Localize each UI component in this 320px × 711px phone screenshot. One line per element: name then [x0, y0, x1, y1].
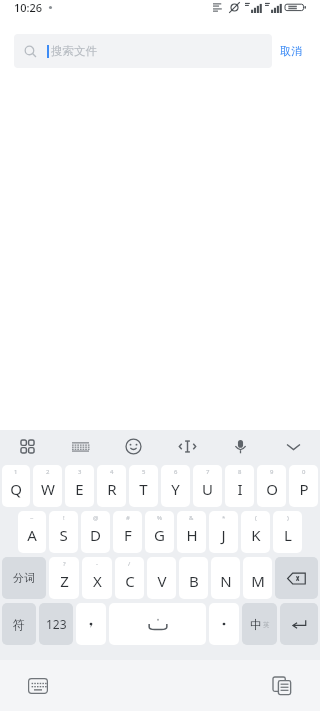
- staticText: R: [107, 479, 117, 499]
- staticText: 10:26: [14, 0, 43, 15]
- staticText: 分词: [13, 571, 35, 585]
- staticText: 5: [142, 468, 146, 476]
- button[interactable]: N: [211, 557, 240, 599]
- button[interactable]: Voice input: [225, 431, 255, 461]
- button[interactable]: 中: [242, 603, 277, 645]
- staticText: /: [128, 560, 131, 568]
- staticText: X: [93, 571, 102, 591]
- button[interactable]: Comma: [76, 603, 106, 645]
- staticText: E: [75, 479, 84, 499]
- button[interactable]: Period: [209, 603, 239, 645]
- button[interactable]: ~: [18, 511, 46, 553]
- staticText: *: [222, 514, 226, 522]
- staticText: K: [251, 525, 261, 545]
- staticText: 7: [206, 468, 210, 476]
- button[interactable]: Emoji: [118, 431, 148, 461]
- button[interactable]: Text editing: [172, 431, 202, 461]
- staticText: O: [266, 479, 278, 499]
- staticText: 4: [110, 468, 114, 476]
- staticText: 0: [302, 468, 306, 476]
- staticText: 8: [238, 468, 242, 476]
- staticText: J: [221, 525, 226, 545]
- staticText: Q: [10, 479, 22, 499]
- staticText: H: [186, 525, 198, 545]
- staticText: &: [189, 514, 194, 522]
- staticText: 搜索文件: [51, 44, 97, 58]
- staticText: 1: [14, 468, 18, 476]
- button[interactable]: B: [179, 557, 208, 599]
- staticText: 9: [270, 468, 274, 476]
- button[interactable]: -: [82, 557, 112, 599]
- button[interactable]: 取消: [272, 38, 310, 64]
- button[interactable]: Keyboard layout: [65, 431, 95, 461]
- staticText: G: [154, 525, 165, 545]
- staticText: 3: [78, 468, 82, 476]
- button[interactable]: 2: [33, 465, 62, 507]
- staticText: Y: [171, 479, 180, 499]
- button[interactable]: 6: [161, 465, 190, 507]
- button[interactable]: 4: [97, 465, 126, 507]
- button[interactable]: !: [49, 511, 78, 553]
- button[interactable]: (: [241, 511, 270, 553]
- button[interactable]: 5: [129, 465, 158, 507]
- button[interactable]: Keyboard: [22, 670, 54, 702]
- staticText: U: [202, 479, 213, 499]
- staticText: V: [157, 571, 167, 591]
- staticText: 123: [46, 616, 67, 632]
- staticText: @: [93, 514, 99, 522]
- staticText: S: [59, 525, 68, 545]
- button[interactable]: Enter: [280, 603, 318, 645]
- button[interactable]: @: [81, 511, 110, 553]
- staticText: D: [90, 525, 101, 545]
- staticText: 取消: [280, 44, 302, 58]
- button[interactable]: 分词: [2, 557, 46, 599]
- staticText: B: [189, 571, 199, 591]
- staticText: #: [126, 514, 130, 522]
- staticText: C: [125, 571, 135, 591]
- button[interactable]: Apps: [12, 431, 42, 461]
- button[interactable]: M: [243, 557, 272, 599]
- staticText: Z: [60, 571, 69, 591]
- button[interactable]: &: [177, 511, 206, 553]
- staticText: 符: [13, 617, 25, 632]
- button[interactable]: 符: [2, 603, 36, 645]
- staticText: !: [63, 514, 65, 522]
- staticText: 2: [46, 468, 50, 476]
- staticText: 6: [174, 468, 178, 476]
- button[interactable]: 8: [225, 465, 254, 507]
- button[interactable]: ?: [49, 557, 79, 599]
- button[interactable]: 123: [39, 603, 73, 645]
- button[interactable]: V: [147, 557, 176, 599]
- button[interactable]: Clipboard: [266, 670, 298, 702]
- staticText: N: [220, 571, 232, 591]
- staticText: I: [237, 479, 243, 499]
- staticText: L: [284, 525, 292, 545]
- staticText: ~: [30, 514, 34, 522]
- button[interactable]: Backspace: [275, 557, 318, 599]
- button[interactable]: ): [273, 511, 302, 553]
- button[interactable]: 搜索文件: [14, 34, 272, 68]
- button[interactable]: 0: [289, 465, 318, 507]
- button[interactable]: Hide keyboard: [278, 431, 308, 461]
- button[interactable]: #: [113, 511, 142, 553]
- staticText: -: [96, 560, 98, 568]
- button[interactable]: Space: [109, 603, 206, 645]
- staticText: M: [251, 571, 265, 591]
- staticText: 中: [250, 617, 262, 632]
- staticText: 英: [263, 621, 270, 629]
- button[interactable]: 1: [2, 465, 30, 507]
- staticText: T: [139, 479, 148, 499]
- button[interactable]: 3: [65, 465, 94, 507]
- staticText: F: [124, 525, 132, 545]
- button[interactable]: %: [145, 511, 174, 553]
- button[interactable]: 9: [257, 465, 286, 507]
- staticText: W: [41, 479, 55, 499]
- staticText: A: [27, 525, 37, 545]
- button[interactable]: /: [115, 557, 144, 599]
- button[interactable]: 7: [193, 465, 222, 507]
- staticText: (: [255, 514, 257, 522]
- staticText: %: [157, 514, 162, 522]
- staticText: ?: [63, 560, 66, 568]
- staticText: P: [299, 479, 309, 499]
- button[interactable]: *: [209, 511, 238, 553]
